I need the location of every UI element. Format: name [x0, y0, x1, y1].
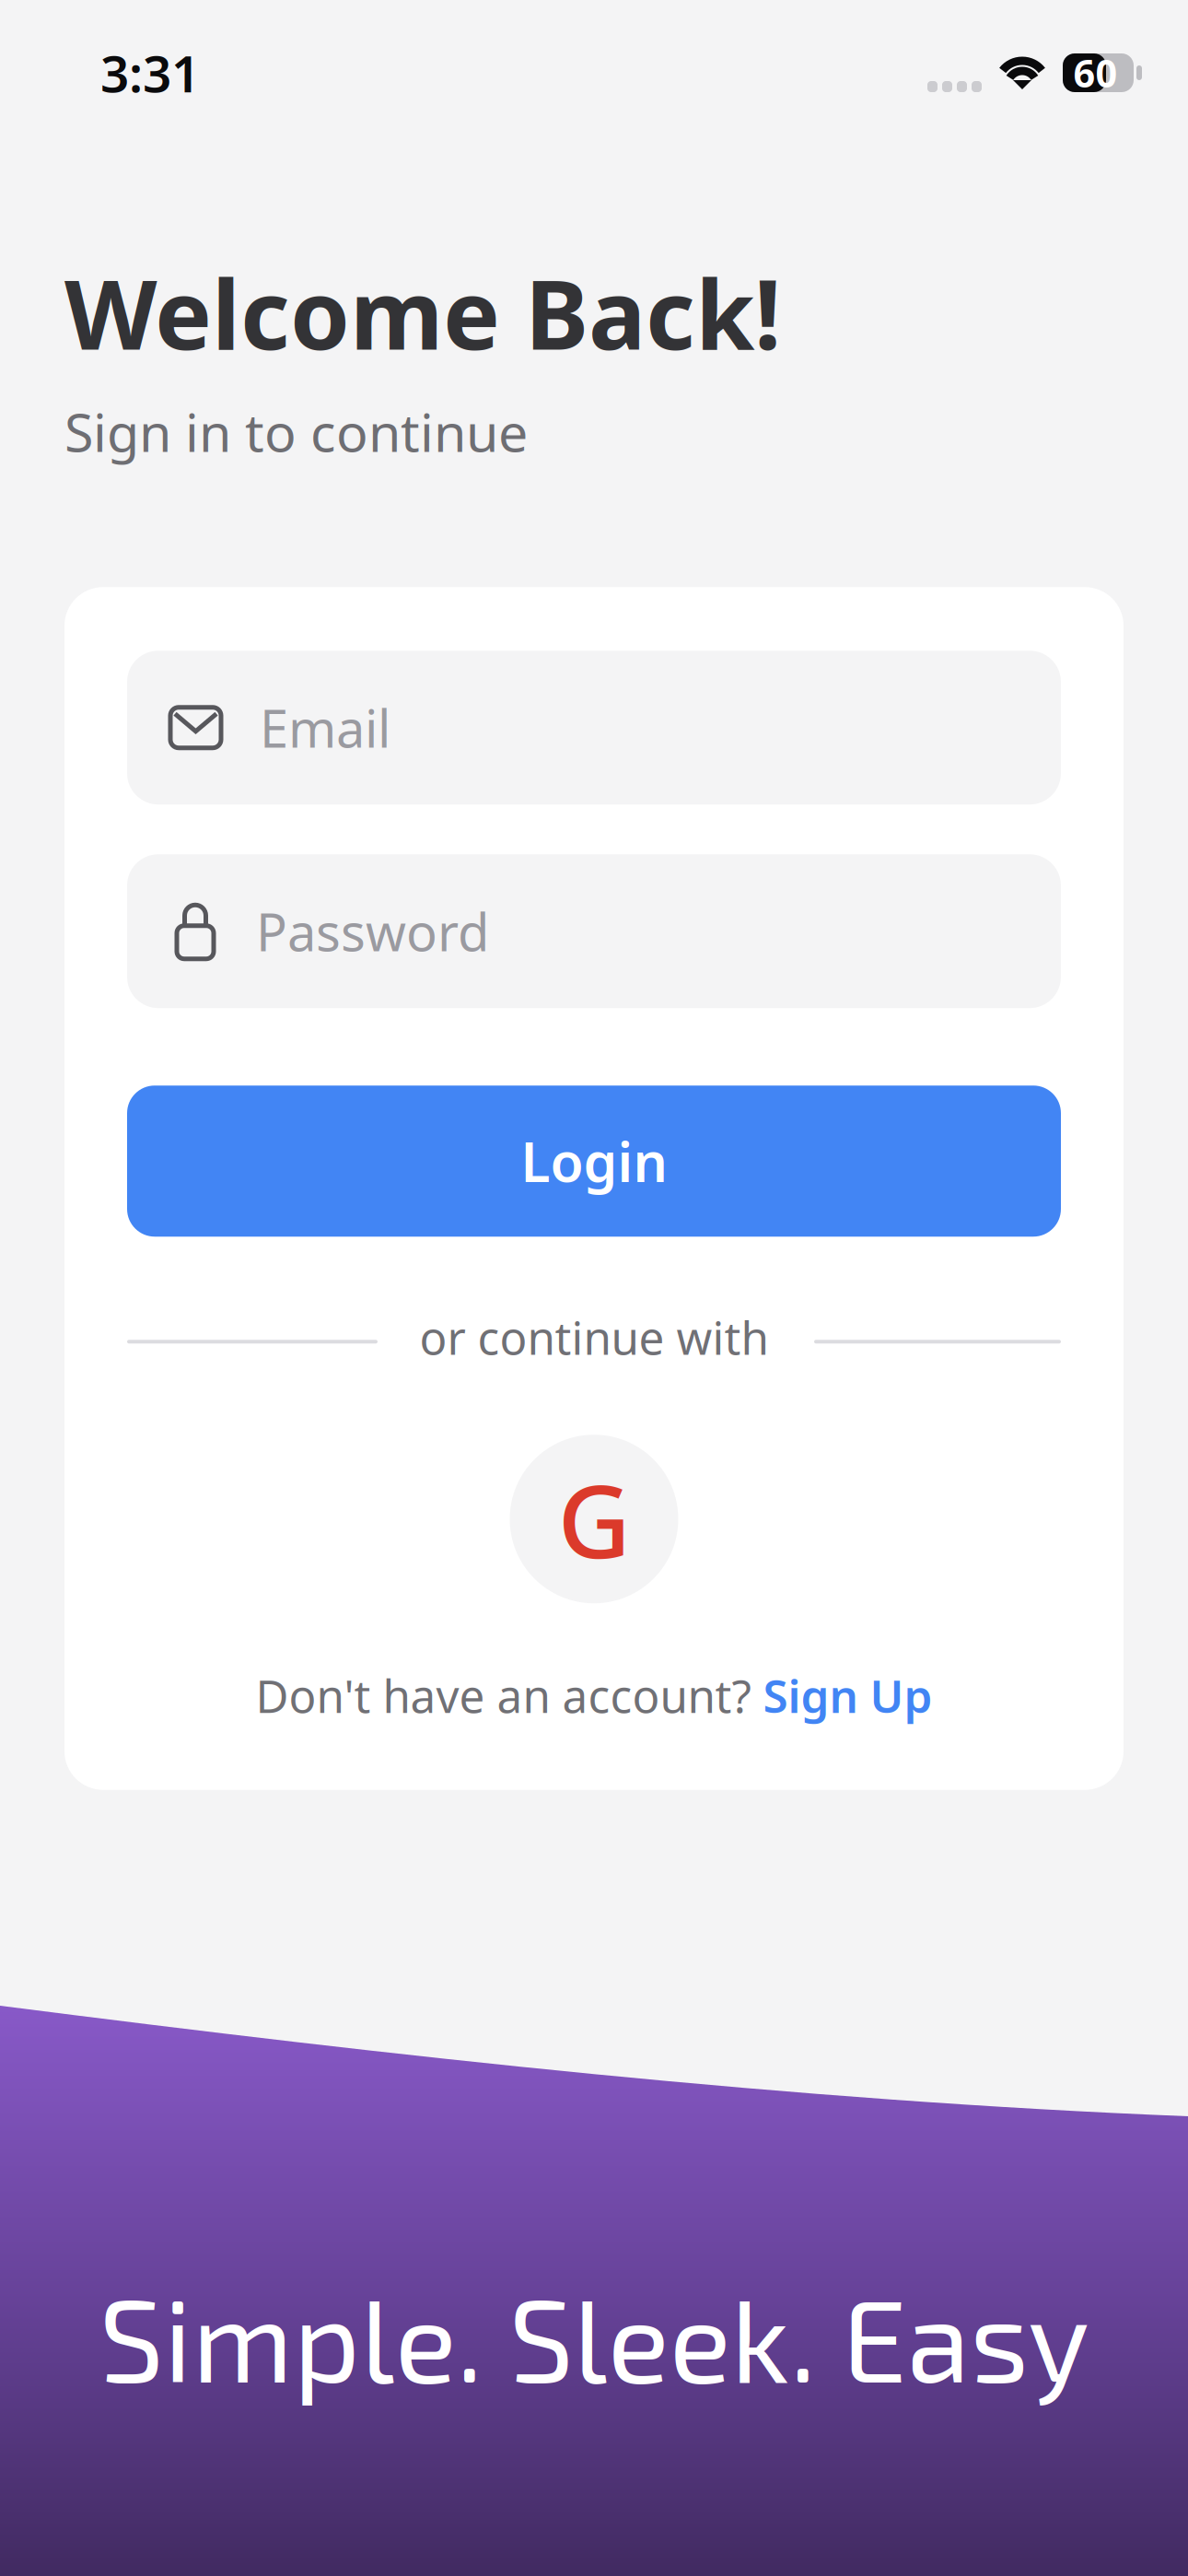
- staticText: Sign Up: [763, 1665, 932, 1725]
- staticText: Email: [260, 693, 390, 762]
- staticText: Don't have an account?: [256, 1665, 763, 1725]
- staticText: Password: [256, 897, 489, 966]
- button[interactable]: Login: [127, 1085, 1061, 1237]
- staticText: G: [558, 1452, 630, 1586]
- staticText: 3:31: [100, 39, 200, 106]
- staticText: Sign in to continue: [64, 396, 528, 466]
- staticText: or continue with: [419, 1307, 769, 1367]
- button[interactable]: Don't have an account?: [256, 1665, 932, 1725]
- staticText: Welcome Back!: [64, 249, 781, 376]
- staticText: Simple. Sleek. Easy: [99, 2267, 1089, 2406]
- staticText: Login: [521, 1125, 667, 1197]
- staticText: 60: [1073, 48, 1118, 98]
- button[interactable]: Continue with Google: [510, 1435, 678, 1603]
